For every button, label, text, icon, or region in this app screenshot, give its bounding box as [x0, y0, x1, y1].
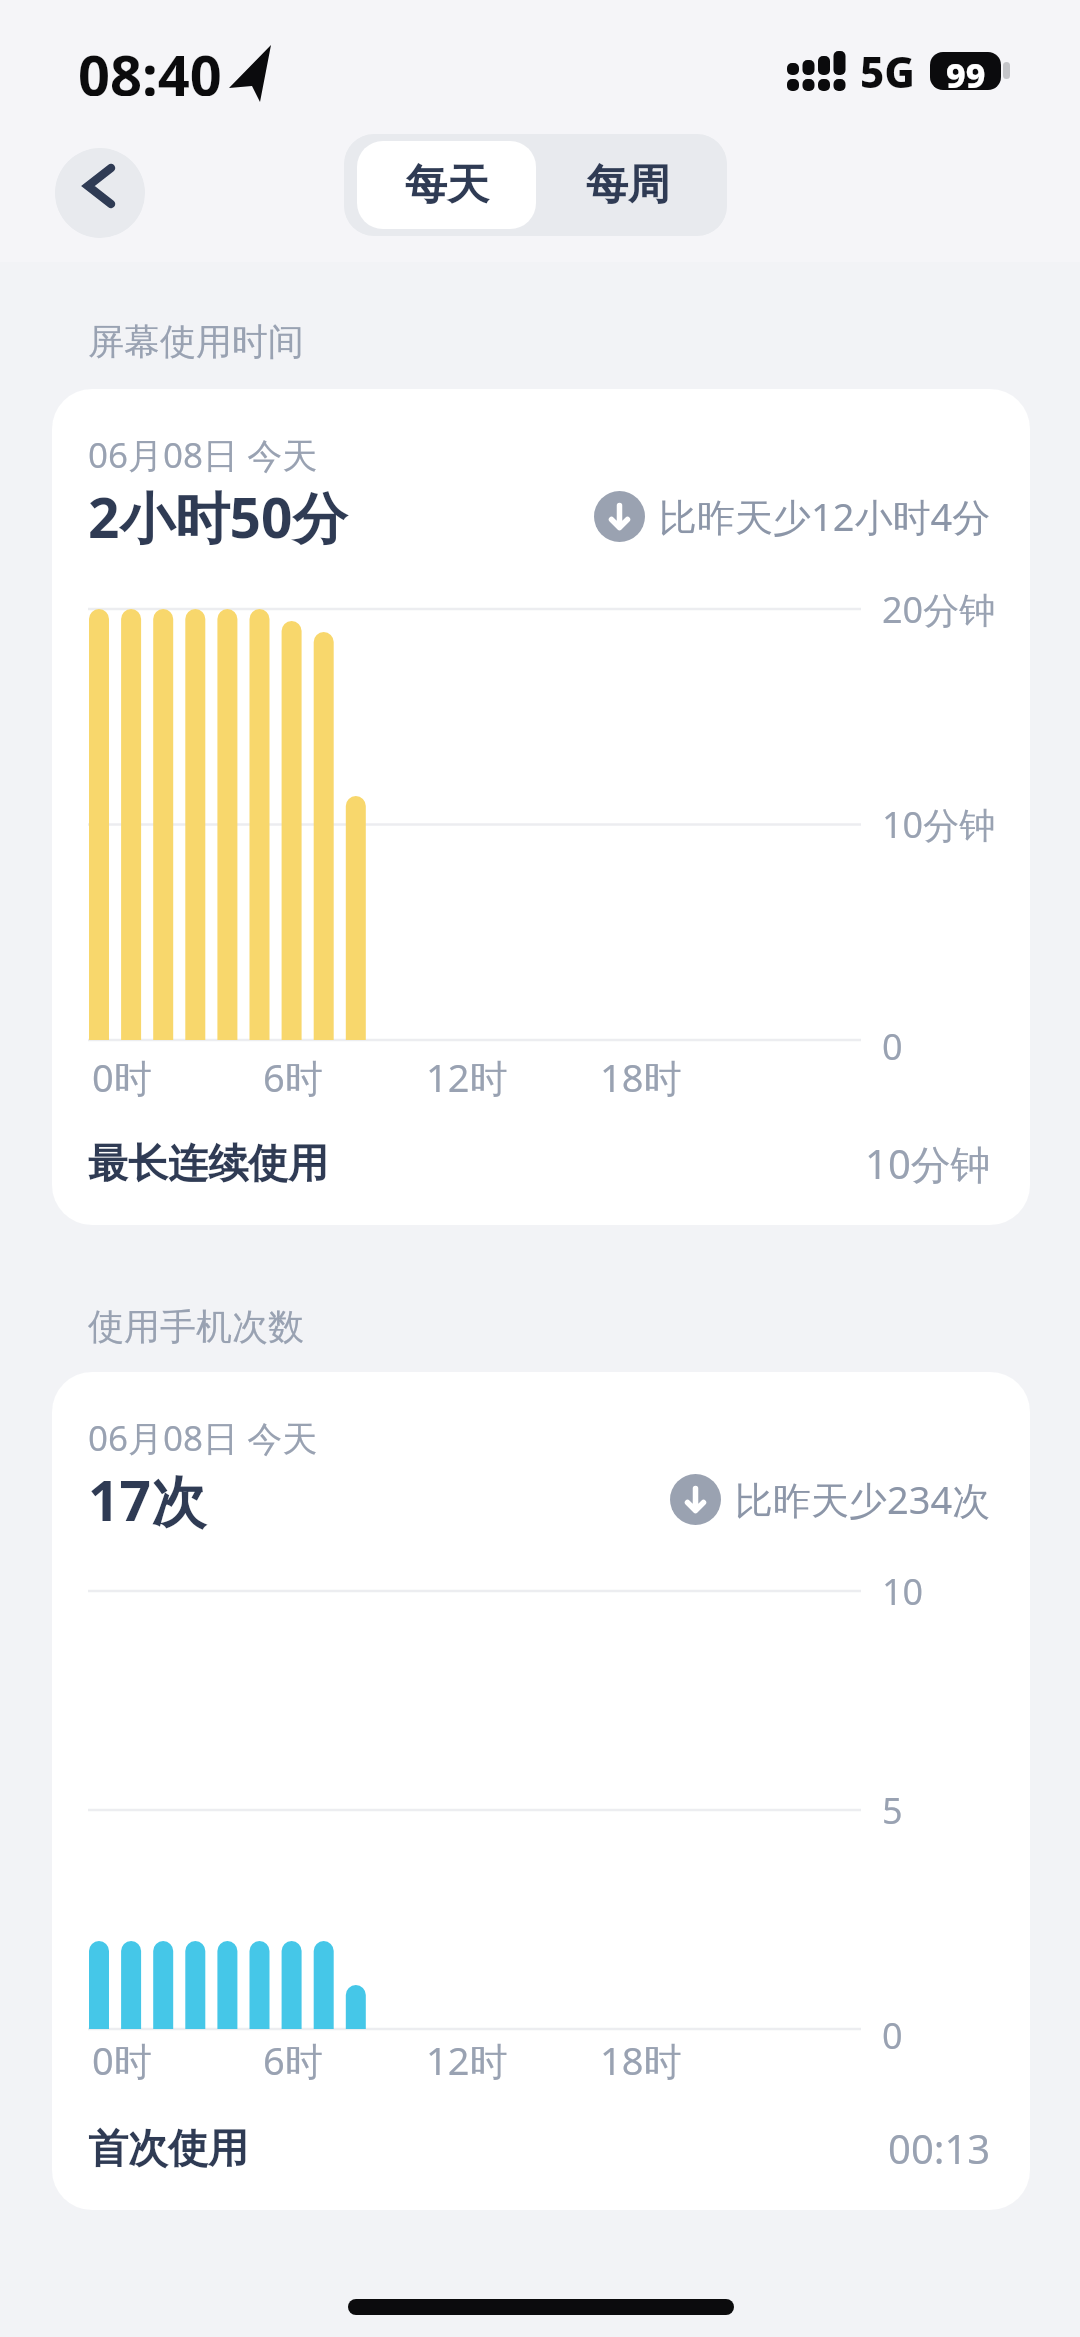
button[interactable]: 每周	[536, 141, 720, 229]
button[interactable]: 06月08日 今天	[52, 389, 1030, 1225]
staticText: 最长连续使用	[88, 1138, 328, 1188]
staticText: 使用手机次数	[88, 1304, 304, 1349]
staticText: 6时	[263, 1051, 323, 1103]
staticText: 首次使用	[88, 2123, 248, 2173]
staticText: 18时	[600, 1051, 682, 1103]
staticText: 18时	[600, 2034, 682, 2086]
staticText: 5G	[860, 43, 915, 100]
button[interactable]: 06月08日 今天	[52, 1372, 1030, 2210]
staticText: 99	[946, 52, 986, 90]
staticText: 屏幕使用时间	[88, 319, 304, 364]
staticText: 06月08日 今天	[88, 431, 318, 479]
staticText: 0时	[92, 2034, 152, 2086]
staticText: 00:13	[888, 2121, 991, 2175]
button[interactable]	[55, 148, 145, 238]
staticText: 2小时50分	[88, 479, 348, 554]
staticText: 08:40	[78, 36, 222, 96]
staticText: 6时	[263, 2034, 323, 2086]
staticText: 06月08日 今天	[88, 1414, 318, 1462]
staticText: 12时	[426, 2034, 508, 2086]
staticText: 10	[882, 1567, 924, 1616]
staticText: 每天	[405, 159, 489, 212]
staticText: 17次	[88, 1462, 206, 1537]
staticText: 比昨天少12小时4分	[659, 490, 991, 542]
staticText: 12时	[426, 1051, 508, 1103]
staticText: 0时	[92, 1051, 152, 1103]
staticText: 0	[882, 1022, 903, 1071]
staticText: 10分钟	[882, 800, 996, 849]
staticText: 20分钟	[882, 585, 996, 634]
staticText: 10分钟	[865, 1136, 991, 1191]
staticText: 每周	[586, 159, 670, 212]
button[interactable]: 每天	[357, 141, 536, 229]
staticText: 5	[882, 1786, 903, 1835]
staticText: 0	[882, 2011, 903, 2060]
staticText: 比昨天少234次	[735, 1473, 991, 1525]
